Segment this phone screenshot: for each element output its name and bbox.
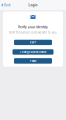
staticText: Login [28, 3, 37, 7]
staticText: Verify your identity [18, 25, 48, 29]
button[interactable]: Paste [14, 58, 52, 64]
button[interactable]: Change Active Device [12, 49, 53, 55]
staticText: Back [4, 3, 11, 7]
button[interactable]: Back [0, 0, 13, 10]
staticText: Paste [30, 59, 36, 63]
button[interactable]: RSVP [14, 40, 52, 45]
staticText: RSVP [29, 41, 36, 44]
staticText: Enter the 6-digit code we sent to you [9, 31, 57, 34]
staticText: Change Active Device [20, 50, 46, 54]
